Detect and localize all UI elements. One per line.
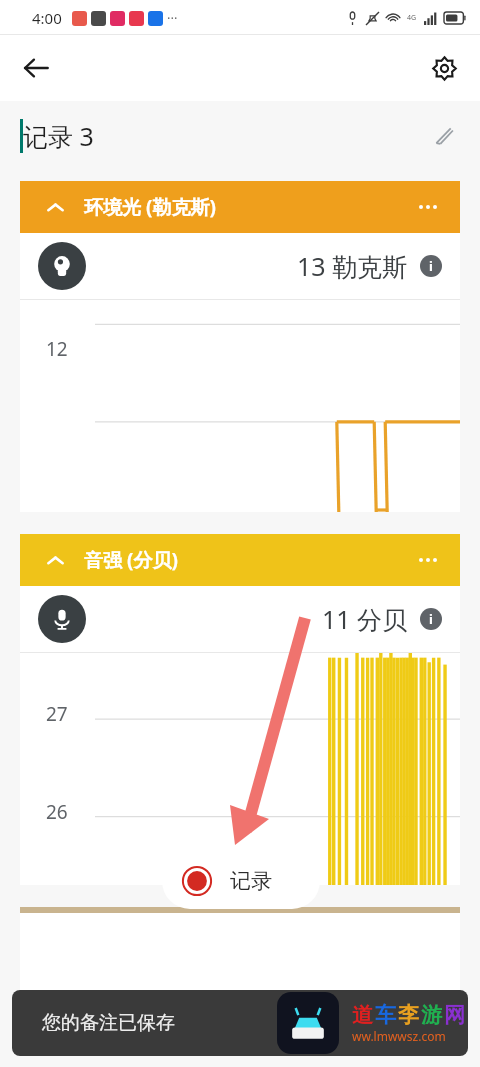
staticText: i xyxy=(429,257,433,275)
staticText: 网 xyxy=(444,1002,465,1028)
staticText: 道 xyxy=(352,1002,373,1028)
button[interactable]: Settings xyxy=(422,46,466,90)
button[interactable]: Back xyxy=(14,46,58,90)
staticText: 11 分贝 xyxy=(322,602,408,636)
staticText: 环境光 (勒克斯) xyxy=(84,194,216,220)
staticText: 12 xyxy=(46,336,68,362)
button[interactable]: More options xyxy=(410,542,446,578)
button[interactable] xyxy=(20,907,460,913)
staticText: 4G xyxy=(407,13,417,23)
staticText: 13 勒克斯 xyxy=(297,249,408,283)
button[interactable]: Edit xyxy=(422,115,464,157)
button[interactable]: More options xyxy=(410,189,446,225)
button[interactable]: 环境光 (勒克斯) xyxy=(20,181,460,233)
staticText: ··· xyxy=(167,9,178,27)
staticText: 音强 (分贝) xyxy=(84,547,178,573)
staticText: 您的备注已保存 xyxy=(42,1011,175,1035)
staticText: 李 xyxy=(398,1002,419,1028)
staticText: 记录 3 xyxy=(23,119,94,153)
staticText: 记录 xyxy=(230,868,272,894)
staticText: i xyxy=(429,610,433,628)
staticText: ww.lmwwsz.com xyxy=(352,1028,446,1044)
button[interactable]: 记录 xyxy=(162,853,320,909)
staticText: 车 xyxy=(375,1002,396,1028)
button[interactable]: Info xyxy=(420,608,442,630)
staticText: 27 xyxy=(46,701,68,727)
button[interactable]: 音强 (分贝) xyxy=(20,534,460,586)
staticText: 26 xyxy=(46,799,68,825)
button[interactable]: Info xyxy=(420,255,442,277)
staticText: 游 xyxy=(421,1002,442,1028)
staticText: 4:00 xyxy=(32,8,62,28)
